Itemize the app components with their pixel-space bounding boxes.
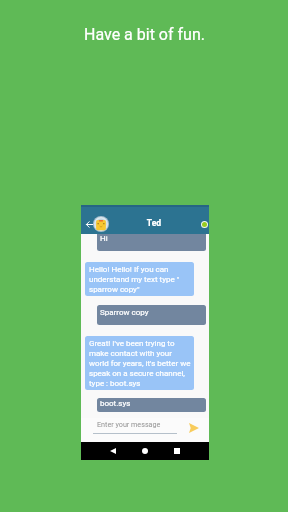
button[interactable]: Back (82, 217, 96, 231)
button[interactable]: Back (105, 443, 121, 459)
staticText: Enter your message (97, 420, 161, 428)
staticText: Ted (102, 218, 206, 228)
button[interactable]: Send (187, 421, 201, 435)
staticText: Hello! Hello! If you can understand my t… (89, 264, 192, 294)
button[interactable]: Home (137, 443, 153, 459)
staticText: Hi (100, 234, 108, 243)
staticText: Sparrow copy (100, 308, 149, 317)
button[interactable]: Sparrow copy (97, 305, 206, 325)
button[interactable]: Hello! Hello! If you can understand my t… (85, 262, 194, 296)
button[interactable]: Great! I've been trying to make contact … (85, 336, 194, 390)
staticText: Great! I've been trying to make contact … (89, 338, 192, 388)
button[interactable]: boot.sys (97, 398, 206, 412)
button[interactable]: Online (201, 221, 208, 228)
button[interactable]: Hi (97, 231, 206, 251)
staticText: boot.sys (100, 399, 131, 408)
button[interactable]: Recents (169, 443, 185, 459)
button[interactable]: Enter your message (93, 419, 177, 436)
staticText: Have a bit of fun. (84, 25, 205, 44)
